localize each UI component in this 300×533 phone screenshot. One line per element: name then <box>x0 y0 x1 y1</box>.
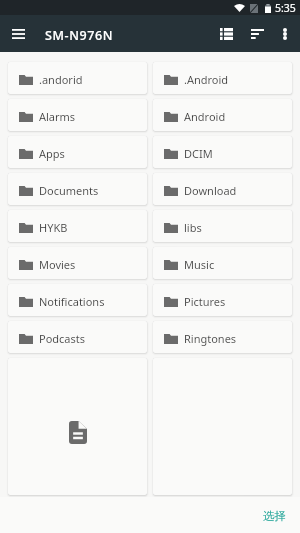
staticText: Alarms <box>39 109 76 124</box>
staticText: Documents <box>39 183 99 198</box>
staticText: .Android <box>184 72 229 87</box>
button[interactable]: Sort <box>242 15 273 52</box>
staticText: Download <box>184 183 237 198</box>
button[interactable]: Podcasts <box>8 321 147 353</box>
button[interactable]: .Android <box>153 62 292 94</box>
button[interactable]: DCIM <box>153 136 292 168</box>
button[interactable]: Download <box>153 173 292 205</box>
staticText: Music <box>184 257 215 272</box>
button[interactable]: View list <box>210 15 242 52</box>
staticText: Apps <box>39 146 65 161</box>
staticText: 选择 <box>263 509 286 523</box>
staticText: Pictures <box>184 294 226 309</box>
staticText: .andorid <box>39 72 83 87</box>
button[interactable]: Documents <box>8 173 147 205</box>
button[interactable]: More options <box>273 15 297 52</box>
staticText: Podcasts <box>39 331 86 346</box>
button[interactable]: Menu <box>6 15 31 52</box>
button[interactable]: libs <box>153 210 292 242</box>
button[interactable]: Android <box>153 99 292 131</box>
staticText: Movies <box>39 257 76 272</box>
staticText: SM-N976N <box>45 27 114 44</box>
button[interactable]: Music <box>153 247 292 279</box>
staticText: DCIM <box>184 146 213 161</box>
button[interactable]: Alarms <box>8 99 147 131</box>
button[interactable]: Apps <box>8 136 147 168</box>
button[interactable]: Notifications <box>8 284 147 316</box>
staticText: Android <box>184 109 226 124</box>
button[interactable]: HYKB <box>8 210 147 242</box>
staticText: Ringtones <box>184 331 237 346</box>
staticText: HYKB <box>39 220 68 235</box>
staticText: 5:35 <box>275 1 296 15</box>
button[interactable]: Movies <box>8 247 147 279</box>
staticText: libs <box>184 220 202 235</box>
button[interactable]: Ringtones <box>153 321 292 353</box>
button[interactable]: Pictures <box>153 284 292 316</box>
staticText: Notifications <box>39 294 105 309</box>
button[interactable]: 选择 <box>247 501 300 529</box>
button[interactable]: .andorid <box>8 62 147 94</box>
